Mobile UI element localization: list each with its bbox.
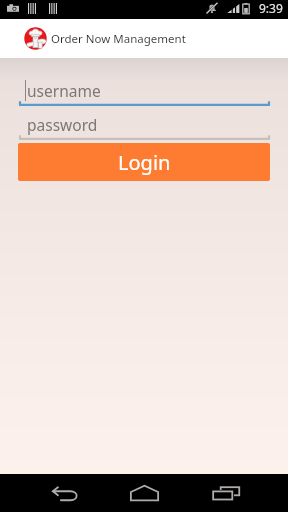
staticText: Login [118, 149, 171, 176]
staticText: Order Now Management [51, 31, 186, 47]
staticText: password [27, 114, 98, 135]
button[interactable]: Recent apps [194, 474, 258, 512]
button[interactable]: Login [18, 143, 270, 181]
staticText: username [27, 80, 101, 101]
button[interactable]: password [19, 113, 270, 140]
button[interactable]: username [19, 79, 270, 106]
button[interactable]: Home [112, 474, 176, 512]
staticText: 9:39 [259, 0, 283, 16]
button[interactable]: Back [33, 474, 97, 512]
